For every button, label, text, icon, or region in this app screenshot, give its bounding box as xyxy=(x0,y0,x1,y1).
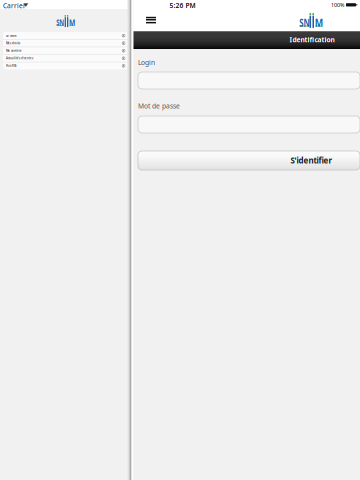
staticText: Mes droits xyxy=(6,41,20,45)
staticText: SN xyxy=(56,17,67,28)
staticText: La SNIM xyxy=(6,34,16,37)
staticText: 5:26 PM xyxy=(169,1,195,10)
button[interactable]: La SNIM xyxy=(3,32,128,39)
staticText: Identification xyxy=(289,35,334,44)
button[interactable]: S'identifier xyxy=(138,151,360,170)
button[interactable]: Mes droits xyxy=(3,40,128,47)
staticText: 100% xyxy=(331,1,344,8)
button[interactable]: Menu xyxy=(141,9,161,31)
staticText: SN xyxy=(299,16,314,30)
staticText: M xyxy=(315,16,325,30)
staticText: Carrier xyxy=(3,1,26,10)
button[interactable]: Ma carrière xyxy=(3,47,128,54)
button[interactable]: Actualités récentes xyxy=(3,55,128,62)
staticText: Login xyxy=(138,58,155,67)
staticText: Flux RSS xyxy=(6,64,16,68)
staticText: S'identifier xyxy=(290,155,332,166)
staticText: Actualités récentes xyxy=(6,56,33,60)
staticText: Ma carrière xyxy=(6,49,22,52)
button[interactable]: Flux RSS xyxy=(3,62,128,69)
staticText: Mot de passe xyxy=(138,101,180,110)
staticText: M xyxy=(69,17,77,28)
